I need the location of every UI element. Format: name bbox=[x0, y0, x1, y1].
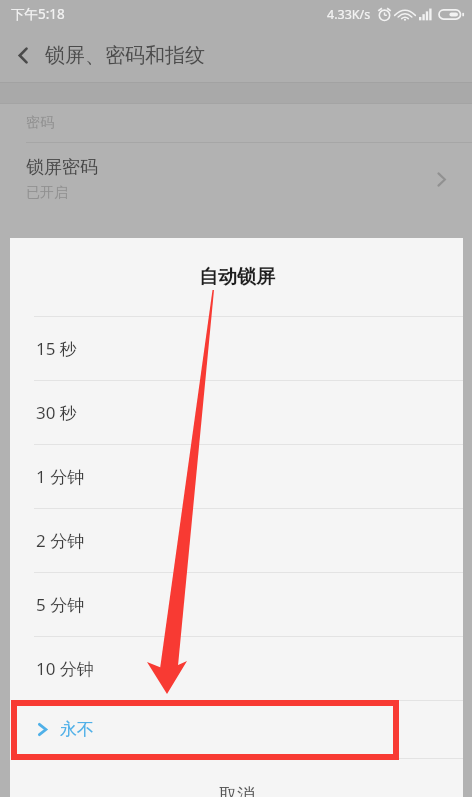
button[interactable]: 15 秒 bbox=[10, 317, 463, 380]
button[interactable]: 锁屏密码 bbox=[0, 143, 472, 215]
staticText: 锁屏、密码和指纹 bbox=[45, 43, 205, 68]
staticText: 自动锁屏 bbox=[199, 265, 275, 289]
button[interactable]: Back bbox=[0, 32, 46, 78]
button[interactable]: 2 分钟 bbox=[10, 509, 463, 572]
staticText: 取消 bbox=[219, 784, 255, 797]
button[interactable]: 30 秒 bbox=[10, 381, 463, 444]
staticText: 10 分钟 bbox=[36, 657, 94, 680]
button[interactable]: 1 分钟 bbox=[10, 445, 463, 508]
staticText: 已开启 bbox=[26, 184, 68, 202]
staticText: 密码 bbox=[26, 114, 54, 132]
staticText: 30 秒 bbox=[36, 401, 77, 424]
staticText: 2 分钟 bbox=[36, 529, 85, 552]
staticText: 5 分钟 bbox=[36, 593, 85, 616]
staticText: 1 分钟 bbox=[36, 465, 85, 488]
button[interactable]: 10 分钟 bbox=[10, 637, 463, 700]
button[interactable]: 永不 bbox=[10, 701, 463, 758]
button[interactable]: 5 分钟 bbox=[10, 573, 463, 636]
staticText: 永不 bbox=[60, 719, 94, 740]
staticText: 15 秒 bbox=[36, 337, 77, 360]
staticText: 锁屏密码 bbox=[26, 156, 98, 179]
staticText: 4.33K/s bbox=[327, 6, 371, 23]
staticText: 下午5:18 bbox=[11, 5, 65, 23]
button[interactable]: 取消 bbox=[10, 759, 463, 797]
